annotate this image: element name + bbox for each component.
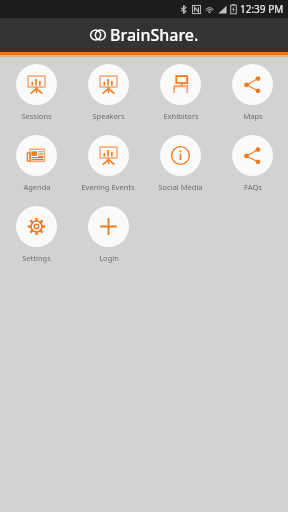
button[interactable]: Speakers <box>87 64 130 121</box>
staticText: Speakers <box>92 111 125 121</box>
staticText: Sessions <box>21 111 52 121</box>
other: FAQs <box>242 145 263 166</box>
other: Agenda <box>26 145 47 166</box>
staticText: FAQs <box>244 182 262 192</box>
staticText: Settings <box>22 253 51 263</box>
staticText: Login <box>99 253 119 263</box>
other: Social Media <box>170 145 191 166</box>
staticText: Maps <box>243 111 263 121</box>
button[interactable]: Evening Events <box>80 135 136 192</box>
button[interactable]: Agenda <box>15 135 58 192</box>
staticText: 12:39 PM <box>240 2 284 16</box>
other: Evening Events <box>98 145 119 166</box>
other: Settings <box>26 216 47 237</box>
button[interactable]: Login <box>87 206 130 263</box>
button[interactable]: Sessions <box>15 64 58 121</box>
staticText: BrainShare. <box>110 24 199 46</box>
button[interactable]: Social Media <box>157 135 204 192</box>
staticText: Evening Events <box>81 182 135 192</box>
button[interactable]: Settings <box>15 206 58 263</box>
staticText: Agenda <box>23 182 51 192</box>
other: Login <box>98 216 119 237</box>
button[interactable]: FAQs <box>231 135 274 192</box>
other: Maps <box>242 74 263 95</box>
button[interactable]: Maps <box>231 64 274 121</box>
other: Exhibitors <box>170 74 191 95</box>
staticText: Exhibitors <box>163 111 199 121</box>
other: Speakers <box>98 74 119 95</box>
staticText: Social Media <box>158 182 203 192</box>
other: Sessions <box>26 74 47 95</box>
button[interactable]: Exhibitors <box>159 64 202 121</box>
